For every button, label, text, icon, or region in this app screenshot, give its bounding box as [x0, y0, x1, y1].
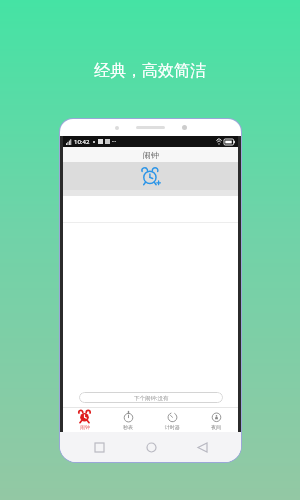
staticText: 闹钟: [143, 150, 159, 160]
staticText: 计时器: [165, 424, 180, 430]
button[interactable]: Back: [189, 434, 215, 460]
button[interactable]: 夜间: [194, 407, 238, 432]
button[interactable]: Home: [138, 434, 164, 460]
staticText: 10:42: [74, 138, 90, 146]
button[interactable]: Add alarm: [63, 162, 238, 190]
button[interactable]: 秒表: [106, 407, 150, 432]
staticText: 闹钟: [80, 424, 90, 430]
button[interactable]: 闹钟: [63, 407, 106, 432]
staticText: 秒表: [123, 424, 133, 430]
button[interactable]: 下个闹钟:没有: [79, 392, 223, 403]
staticText: 夜间: [211, 424, 221, 430]
button[interactable]: Recent apps: [86, 434, 112, 460]
staticText: 下个闹钟:没有: [134, 394, 169, 402]
button[interactable]: 计时器: [150, 407, 194, 432]
staticText: 经典，高效简洁: [94, 61, 206, 81]
staticText: ···: [112, 138, 117, 145]
